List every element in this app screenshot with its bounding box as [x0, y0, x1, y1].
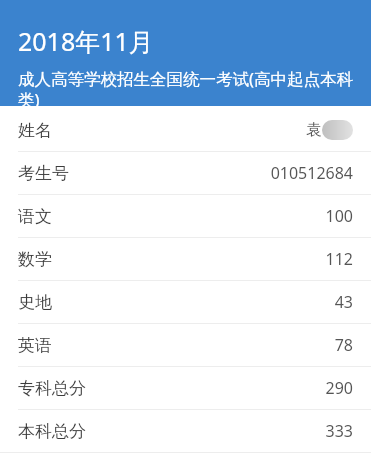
staticText: 100 [325, 205, 353, 227]
staticText: 010512684 [270, 162, 353, 184]
staticText: 姓名 [18, 120, 52, 141]
staticText: 78 [334, 334, 353, 356]
staticText: 数学 [18, 249, 52, 270]
staticText: 成人高等学校招生全国统一考试(高中起点本科类) [18, 67, 353, 106]
staticText: 112 [325, 248, 353, 270]
button[interactable]: 本科总分 [0, 410, 371, 452]
staticText: 专科总分 [18, 378, 86, 399]
button[interactable]: 考生号 [0, 152, 371, 194]
button[interactable]: 史地 [0, 281, 371, 323]
button[interactable]: 姓名 [0, 109, 371, 151]
staticText: 290 [325, 377, 353, 399]
staticText: 英语 [18, 335, 52, 356]
staticText: 史地 [18, 292, 52, 313]
staticText: 43 [334, 291, 353, 313]
staticText: 本科总分 [18, 421, 86, 442]
staticText: 语文 [18, 206, 52, 227]
staticText: 333 [325, 420, 353, 442]
button[interactable]: 专科总分 [0, 367, 371, 409]
staticText: 袁 [306, 120, 322, 140]
staticText: 2018年11月 [18, 24, 154, 58]
button[interactable]: 语文 [0, 195, 371, 237]
staticText: 考生号 [18, 163, 69, 184]
button[interactable]: 英语 [0, 324, 371, 366]
button[interactable]: 数学 [0, 238, 371, 280]
